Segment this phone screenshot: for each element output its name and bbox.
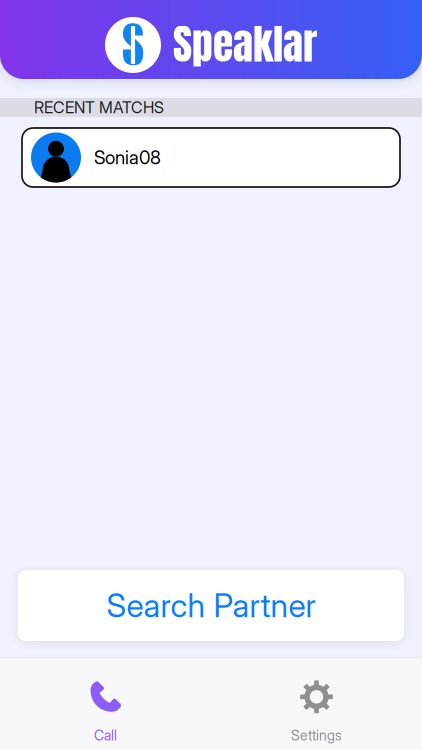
button[interactable]: Sonia08 [22,128,400,187]
staticText: Search Partner [106,586,315,625]
staticText: Speaklar [173,13,317,75]
staticText: Settings [291,727,342,744]
button[interactable]: Settings [211,658,422,750]
staticText: Sonia08 [94,146,161,169]
button[interactable]: Search Partner [18,570,404,641]
staticText: S [122,9,144,81]
staticText: RECENT MATCHS [34,98,164,117]
staticText: Call [94,727,117,744]
button[interactable]: Call [0,658,211,750]
